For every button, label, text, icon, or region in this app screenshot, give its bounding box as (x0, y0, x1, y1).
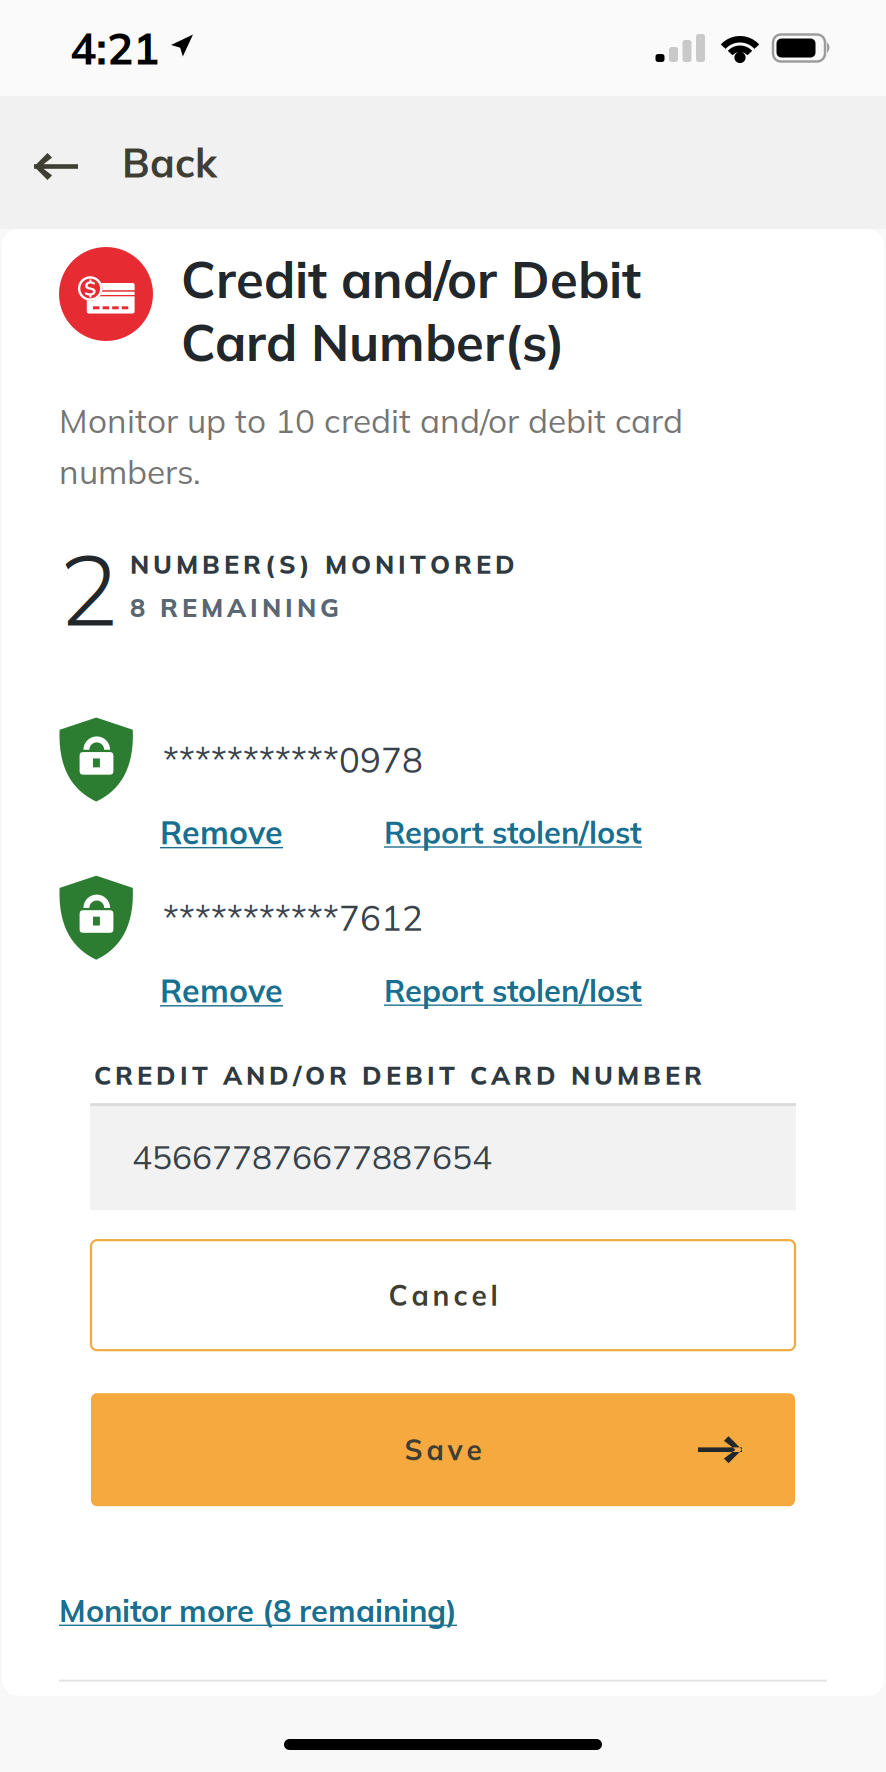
staticText: Back (122, 137, 217, 188)
button[interactable]: S a v e (91, 1393, 795, 1506)
staticText: 456677876677887654 (132, 1136, 492, 1178)
button[interactable]: Report stolen/lost (384, 813, 642, 851)
staticText: Report stolen/lost (384, 971, 642, 1010)
staticText: Credit and/or Debit (181, 247, 641, 311)
button[interactable]: Remove (160, 812, 283, 852)
staticText: ***********0978 (163, 738, 423, 781)
button[interactable]: C a n c e l (91, 1240, 795, 1350)
staticText: ***********7612 (163, 896, 423, 939)
staticText: N U M B E R ( S ) M O N I T O R E D (130, 548, 515, 580)
staticText: Monitor up to 10 credit and/or debit car… (59, 400, 683, 441)
staticText: S a v e (404, 1432, 481, 1467)
staticText: Card Number(s) (181, 310, 565, 374)
staticText: Remove (160, 812, 283, 852)
staticText: 4:21 (70, 20, 159, 76)
staticText: Remove (160, 970, 283, 1010)
staticText: C R E D I T A N D / O R D E B I T C A R … (94, 1059, 702, 1091)
button[interactable]: Back (0, 96, 241, 229)
button[interactable]: Report stolen/lost (384, 971, 642, 1010)
staticText: Report stolen/lost (384, 813, 642, 851)
staticText: numbers. (59, 450, 201, 492)
button[interactable]: Monitor more (8 remaining) (59, 1591, 457, 1630)
staticText: $ (84, 275, 96, 301)
staticText: Monitor more (8 remaining) (59, 1591, 457, 1630)
button[interactable]: Remove (160, 970, 283, 1010)
staticText: C a n c e l (388, 1278, 497, 1313)
staticText: 8 R E M A I N I N G (130, 591, 339, 623)
staticText: 2 (59, 526, 118, 650)
